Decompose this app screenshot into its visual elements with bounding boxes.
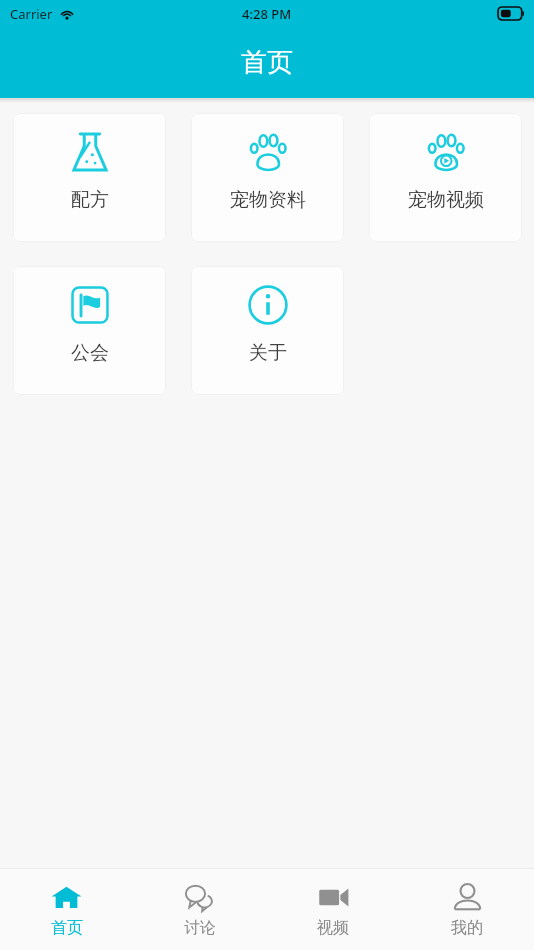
button[interactable]: 配方 <box>13 113 166 242</box>
button[interactable]: 宠物资料 <box>191 113 344 242</box>
button[interactable]: 视频 <box>266 869 400 950</box>
button[interactable]: 首页 <box>0 869 133 950</box>
staticText: 4:28 PM <box>242 5 292 23</box>
button[interactable]: 宠物视频 <box>369 113 522 242</box>
staticText: 首页 <box>241 46 293 79</box>
button[interactable]: 我的 <box>400 869 534 950</box>
other: 讨论 <box>184 882 215 913</box>
staticText: 宠物资料 <box>230 188 306 212</box>
other: 首页 <box>51 882 82 913</box>
staticText: 关于 <box>249 341 287 365</box>
staticText: 我的 <box>451 918 483 938</box>
staticText: 首页 <box>51 918 83 938</box>
other: 视频 <box>318 882 349 913</box>
staticText: 视频 <box>317 918 349 938</box>
button[interactable]: 公会 <box>13 266 166 395</box>
staticText: Carrier <box>10 5 53 23</box>
staticText: 宠物视频 <box>408 188 484 212</box>
other: 我的 <box>452 882 483 913</box>
button[interactable]: 关于 <box>191 266 344 395</box>
staticText: 配方 <box>71 188 109 212</box>
staticText: 讨论 <box>184 918 216 938</box>
button[interactable]: 讨论 <box>133 869 266 950</box>
staticText: 公会 <box>71 341 109 365</box>
